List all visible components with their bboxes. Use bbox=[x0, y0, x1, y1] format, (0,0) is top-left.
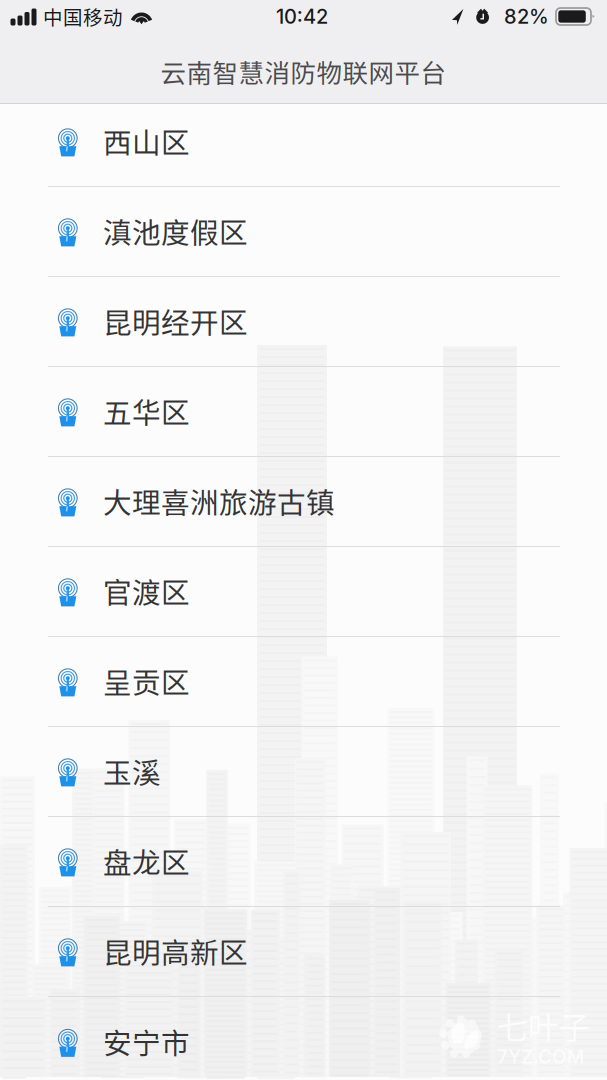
staticText: 玉溪 bbox=[103, 750, 161, 792]
staticText: 七叶子 bbox=[497, 1003, 590, 1048]
button[interactable]: 昆明高新区 bbox=[0, 907, 607, 997]
button[interactable]: 玉溪 bbox=[0, 727, 607, 817]
staticText: 五华区 bbox=[103, 390, 190, 432]
staticText: 昆明高新区 bbox=[103, 930, 248, 972]
staticText: 7YZ.COM bbox=[497, 1045, 584, 1068]
button[interactable]: 西山区 bbox=[0, 97, 607, 187]
staticText: 安宁市 bbox=[103, 1021, 190, 1062]
button[interactable]: 官渡区 bbox=[0, 547, 607, 637]
button[interactable]: 呈贡区 bbox=[0, 637, 607, 727]
staticText: 82% bbox=[504, 4, 549, 29]
staticText: 官渡区 bbox=[103, 570, 190, 612]
button[interactable]: 安宁市 bbox=[0, 997, 607, 1080]
staticText: 呈贡区 bbox=[103, 660, 190, 702]
button[interactable]: 昆明经开区 bbox=[0, 277, 607, 367]
button[interactable]: 大理喜洲旅游古镇 bbox=[0, 457, 607, 547]
staticText: 大理喜洲旅游古镇 bbox=[103, 480, 335, 522]
button[interactable]: 五华区 bbox=[0, 367, 607, 457]
staticText: 盘龙区 bbox=[103, 840, 190, 882]
staticText: 中国移动 bbox=[43, 2, 123, 31]
staticText: 10:42 bbox=[276, 4, 328, 29]
button[interactable]: 盘龙区 bbox=[0, 817, 607, 907]
button[interactable]: 滇池度假区 bbox=[0, 187, 607, 277]
staticText: 滇池度假区 bbox=[103, 210, 248, 252]
staticText: 西山区 bbox=[103, 120, 190, 162]
staticText: 云南智慧消防物联网平台 bbox=[160, 53, 446, 90]
staticText: 昆明经开区 bbox=[103, 300, 248, 342]
